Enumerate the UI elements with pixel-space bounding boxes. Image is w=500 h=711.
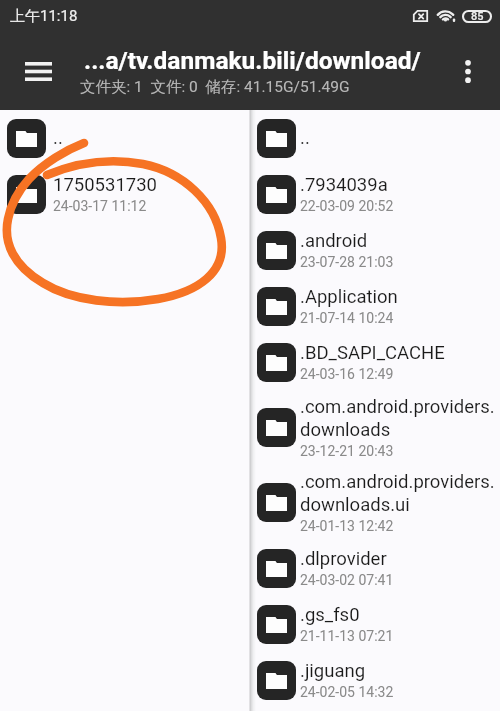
staticText: .Application bbox=[300, 286, 398, 308]
staticText: ...a/tv.danmaku.bili/download/ bbox=[84, 46, 421, 75]
staticText: 21-11-13 07:21 bbox=[300, 628, 394, 644]
button[interactable]: .BD_SAPI_CACHE bbox=[256, 334, 500, 390]
staticText: 1750531730 bbox=[53, 174, 157, 196]
staticText: .. bbox=[53, 127, 63, 149]
staticText: .android bbox=[300, 230, 368, 252]
staticText: .. bbox=[300, 127, 310, 149]
staticText: 24-03-17 11:12 bbox=[53, 198, 147, 214]
button[interactable]: .jiguang bbox=[256, 652, 500, 708]
staticText: .dlprovider bbox=[300, 548, 387, 570]
staticText: .jiguang bbox=[300, 660, 366, 682]
button[interactable]: .gs_fs0 bbox=[256, 596, 500, 652]
button[interactable]: .. bbox=[256, 110, 500, 166]
staticText: 24-02-05 14:32 bbox=[300, 684, 394, 700]
staticText: 23-12-21 20:43 bbox=[300, 443, 394, 459]
staticText: .BD_SAPI_CACHE bbox=[300, 342, 445, 364]
button[interactable]: Menu bbox=[14, 47, 62, 95]
staticText: .7934039a bbox=[300, 174, 388, 196]
staticText: 上午11:18 bbox=[10, 7, 78, 26]
staticText: 文件夹: 1 文件: 0 储存: 41.15G/51.49G bbox=[80, 77, 350, 97]
button[interactable]: .dlprovider bbox=[256, 540, 500, 596]
staticText: .com.android.providers. downloads.ui bbox=[300, 471, 495, 516]
staticText: .com.android.providers. downloads bbox=[300, 396, 495, 441]
button[interactable]: .7934039a bbox=[256, 166, 500, 222]
staticText: 23-07-28 21:03 bbox=[300, 254, 394, 270]
staticText: 22-03-09 20:52 bbox=[300, 198, 394, 214]
button[interactable]: 1750531730 bbox=[0, 166, 249, 222]
staticText: 85 bbox=[471, 10, 484, 23]
button[interactable]: .com.android.providers. downloads.ui bbox=[256, 465, 500, 540]
staticText: 24-01-13 12:42 bbox=[300, 518, 394, 534]
staticText: 21-07-14 10:24 bbox=[300, 310, 394, 326]
staticText: 24-03-02 07:41 bbox=[300, 572, 394, 588]
button[interactable]: More options bbox=[446, 49, 490, 93]
button[interactable]: .Application bbox=[256, 278, 500, 334]
button[interactable]: .android bbox=[256, 222, 500, 278]
staticText: 24-03-16 12:49 bbox=[300, 366, 394, 382]
button[interactable]: .com.android.providers. downloads bbox=[256, 390, 500, 465]
button[interactable]: .. bbox=[0, 110, 249, 166]
staticText: .gs_fs0 bbox=[300, 604, 360, 626]
